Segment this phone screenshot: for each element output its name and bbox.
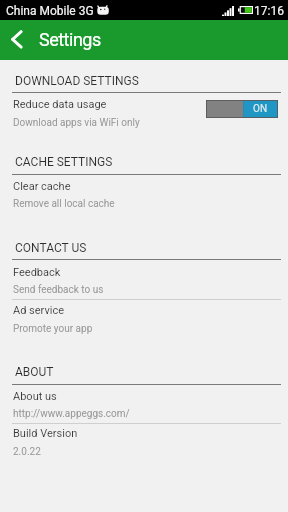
staticText: Ad service	[13, 304, 65, 317]
staticText: China Mobile 3G	[6, 4, 94, 18]
button[interactable]: Back	[5, 26, 29, 50]
button[interactable]	[0, 176, 288, 207]
staticText: About us	[13, 390, 57, 403]
staticText: DOWNLOAD SETTINGS	[15, 74, 139, 88]
button[interactable]	[0, 386, 288, 417]
staticText: ON	[253, 103, 268, 115]
staticText: Send feedback to us	[13, 284, 104, 296]
button[interactable]	[0, 262, 288, 293]
staticText: Clear cache	[13, 180, 71, 193]
button[interactable]	[0, 423, 288, 454]
staticText: CONTACT US	[15, 241, 87, 255]
button[interactable]	[0, 94, 288, 125]
staticText: ABOUT	[15, 365, 54, 379]
button[interactable]: Reduce data usage toggle	[206, 100, 278, 118]
staticText: Build Version	[13, 427, 78, 440]
staticText: Feedback	[13, 266, 61, 279]
staticText: 17:16	[254, 4, 284, 18]
staticText: Download apps via WiFi only	[13, 117, 140, 129]
staticText: Remove all local cache	[13, 198, 115, 210]
button[interactable]	[0, 300, 288, 331]
staticText: 2.0.22	[13, 446, 41, 458]
staticText: Reduce data usage	[13, 98, 107, 111]
staticText: Settings	[39, 29, 101, 50]
staticText: Promote your app	[13, 323, 93, 335]
staticText: http://www.appeggs.com/	[13, 408, 130, 420]
staticText: CACHE SETTINGS	[15, 155, 113, 169]
